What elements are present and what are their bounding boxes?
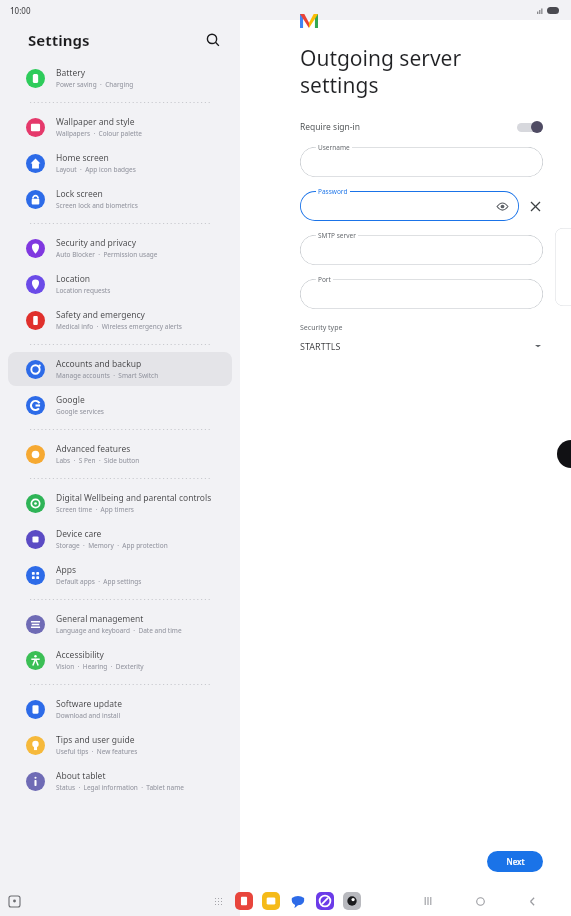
button[interactable]: Recent app xyxy=(6,893,22,909)
staticText: Next xyxy=(506,856,525,867)
button[interactable]: camera xyxy=(343,892,361,910)
staticText: Accounts and backup xyxy=(56,358,142,370)
button[interactable]: Security and privacy xyxy=(8,231,232,265)
staticText: Security and privacy xyxy=(56,237,137,249)
button[interactable]: Device care xyxy=(8,522,232,556)
staticText: General management xyxy=(56,613,144,625)
staticText: Labs · S Pen · Side button xyxy=(56,456,140,465)
staticText: Password xyxy=(318,187,348,196)
staticText: Download and install xyxy=(56,711,121,720)
button[interactable] xyxy=(300,279,543,309)
button[interactable]: Location xyxy=(8,267,232,301)
staticText: Tips and user guide xyxy=(56,734,135,746)
button[interactable]: Lock screen xyxy=(8,182,232,216)
button[interactable]: Recents xyxy=(419,892,437,910)
staticText: Screen lock and biometrics xyxy=(56,201,138,210)
button[interactable]: Back xyxy=(523,892,541,910)
staticText: Language and keyboard · Date and time xyxy=(56,626,182,635)
button[interactable]: STARTTLS xyxy=(300,340,543,352)
staticText: 10:00 xyxy=(10,5,31,16)
button[interactable]: Home screen xyxy=(8,146,232,180)
button[interactable]: Wallpaper and style xyxy=(8,110,232,144)
staticText: Storage · Memory · App protection xyxy=(56,541,168,550)
staticText: Location requests xyxy=(56,286,111,295)
staticText: SMTP server xyxy=(318,231,356,240)
button[interactable] xyxy=(300,147,543,177)
staticText: Google xyxy=(56,394,85,406)
button[interactable]: Safety and emergency xyxy=(8,303,232,337)
staticText: Manage accounts · Smart Switch xyxy=(56,371,159,380)
staticText: Digital Wellbeing and parental controls xyxy=(56,492,212,504)
staticText: Username xyxy=(318,143,350,152)
button[interactable]: Search xyxy=(200,27,226,53)
button[interactable]: Apps xyxy=(8,558,232,592)
button[interactable]: Battery xyxy=(8,61,232,95)
staticText: Accessibility xyxy=(56,649,104,661)
button[interactable]: Next xyxy=(487,851,543,872)
button[interactable]: Advanced features xyxy=(8,437,232,471)
staticText: Safety and emergency xyxy=(56,309,145,321)
staticText: Port xyxy=(318,275,331,284)
staticText: Apps xyxy=(56,564,76,576)
button[interactable]: Tips and user guide xyxy=(8,728,232,762)
staticText: Screen time · App timers xyxy=(56,505,134,514)
staticText: Outgoing server settings xyxy=(300,44,462,99)
staticText: Security type xyxy=(300,323,343,333)
button[interactable]: Software update xyxy=(8,692,232,726)
staticText: STARTTLS xyxy=(300,340,341,352)
button[interactable]: browser xyxy=(316,892,334,910)
button[interactable]: files xyxy=(262,892,280,910)
staticText: Device care xyxy=(56,528,102,540)
staticText: Layout · App icon badges xyxy=(56,165,136,174)
staticText: Status · Legal information · Tablet name xyxy=(56,783,184,792)
staticText: About tablet xyxy=(56,770,106,782)
button[interactable]: Clear password xyxy=(527,198,543,214)
button[interactable]: messages xyxy=(289,892,307,910)
staticText: Lock screen xyxy=(56,188,103,200)
staticText: Advanced features xyxy=(56,443,131,455)
staticText: Home screen xyxy=(56,152,109,164)
staticText: Power saving · Charging xyxy=(56,80,134,89)
staticText: Default apps · App settings xyxy=(56,577,142,586)
button[interactable]: All apps xyxy=(210,893,226,909)
staticText: Software update xyxy=(56,698,122,710)
button[interactable]: Digital Wellbeing and parental controls xyxy=(8,486,232,520)
button[interactable]: General management xyxy=(8,607,232,641)
button[interactable]: Require sign-in xyxy=(300,121,543,133)
staticText: Battery xyxy=(56,67,86,79)
button[interactable]: Accessibility xyxy=(8,643,232,677)
staticText: Useful tips · New features xyxy=(56,747,138,756)
button[interactable]: Accounts and backup xyxy=(8,352,232,386)
button[interactable]: Google xyxy=(8,388,232,422)
staticText: Medical info · Wireless emergency alerts xyxy=(56,322,182,331)
button[interactable] xyxy=(300,235,543,265)
button[interactable] xyxy=(300,191,519,221)
button[interactable]: About tablet xyxy=(8,764,232,798)
staticText: Vision · Hearing · Dexterity xyxy=(56,662,144,671)
staticText: Wallpapers · Colour palette xyxy=(56,129,142,138)
staticText: Settings xyxy=(28,30,90,50)
staticText: Require sign-in xyxy=(300,121,361,133)
staticText: Location xyxy=(56,273,91,285)
button[interactable]: Home xyxy=(471,892,489,910)
button[interactable]: Show password xyxy=(495,199,509,213)
staticText: Wallpaper and style xyxy=(56,116,135,128)
staticText: Google services xyxy=(56,407,104,416)
staticText: Auto Blocker · Permission usage xyxy=(56,250,158,259)
button[interactable]: keep xyxy=(235,892,253,910)
